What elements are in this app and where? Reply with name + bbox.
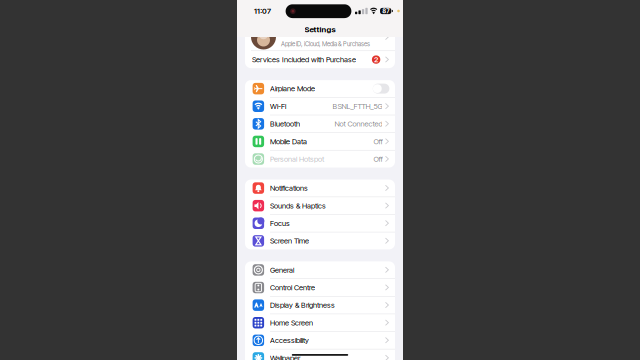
button[interactable]: Control Centre xyxy=(245,279,395,296)
staticText: Services Included with Purchase xyxy=(252,55,356,64)
button[interactable]: Bluetooth xyxy=(245,115,395,132)
staticText: Mobile Data xyxy=(270,137,307,146)
button[interactable]: Ravi Kumar xyxy=(245,23,395,50)
button[interactable]: Display & Brightness xyxy=(245,297,395,314)
button[interactable]: Home Screen xyxy=(245,314,395,331)
staticText: Off xyxy=(373,137,382,146)
button[interactable]: Notifications xyxy=(245,179,395,197)
button[interactable]: Sounds & Haptics xyxy=(245,197,395,214)
button[interactable]: Services Included with Purchase xyxy=(245,51,395,68)
button[interactable]: Mobile Data xyxy=(245,133,395,150)
staticText: BSNL_FTTH_5G xyxy=(332,102,382,111)
button[interactable]: Screen Time xyxy=(245,232,395,249)
staticText: 2 xyxy=(374,55,378,64)
staticText: Screen Time xyxy=(270,236,309,245)
staticText: 87 xyxy=(382,7,389,15)
staticText: Apple ID, iCloud, Media & Purchases xyxy=(281,40,370,48)
staticText: Wi-Fi xyxy=(270,102,286,111)
staticText: Ravi Kumar xyxy=(281,26,337,40)
button[interactable]: Wallpaper xyxy=(245,349,395,360)
button[interactable]: Focus xyxy=(245,215,395,232)
staticText: Wallpaper xyxy=(270,353,300,360)
staticText: Airplane Mode xyxy=(270,84,315,93)
staticText: 11:07 xyxy=(254,6,271,15)
button[interactable]: Personal Hotspot xyxy=(245,150,395,168)
staticText: Off xyxy=(373,154,382,163)
staticText: Settings xyxy=(304,25,335,34)
staticText: Home Screen xyxy=(270,318,313,327)
staticText: Not Connected xyxy=(334,119,382,128)
staticText: Bluetooth xyxy=(270,119,300,128)
staticText: Personal Hotspot xyxy=(270,154,324,163)
button[interactable]: Wi-Fi xyxy=(245,98,395,115)
staticText: Control Centre xyxy=(270,283,315,292)
button[interactable]: Accessibility xyxy=(245,332,395,349)
staticText: Accessibility xyxy=(270,336,309,345)
staticText: Display & Brightness xyxy=(270,301,335,310)
staticText: General xyxy=(270,265,294,274)
button[interactable]: General xyxy=(245,261,395,278)
button[interactable]: Airplane Mode xyxy=(245,80,395,97)
staticText: Focus xyxy=(270,219,290,228)
staticText: Sounds & Haptics xyxy=(270,201,326,210)
staticText: Notifications xyxy=(270,184,308,193)
